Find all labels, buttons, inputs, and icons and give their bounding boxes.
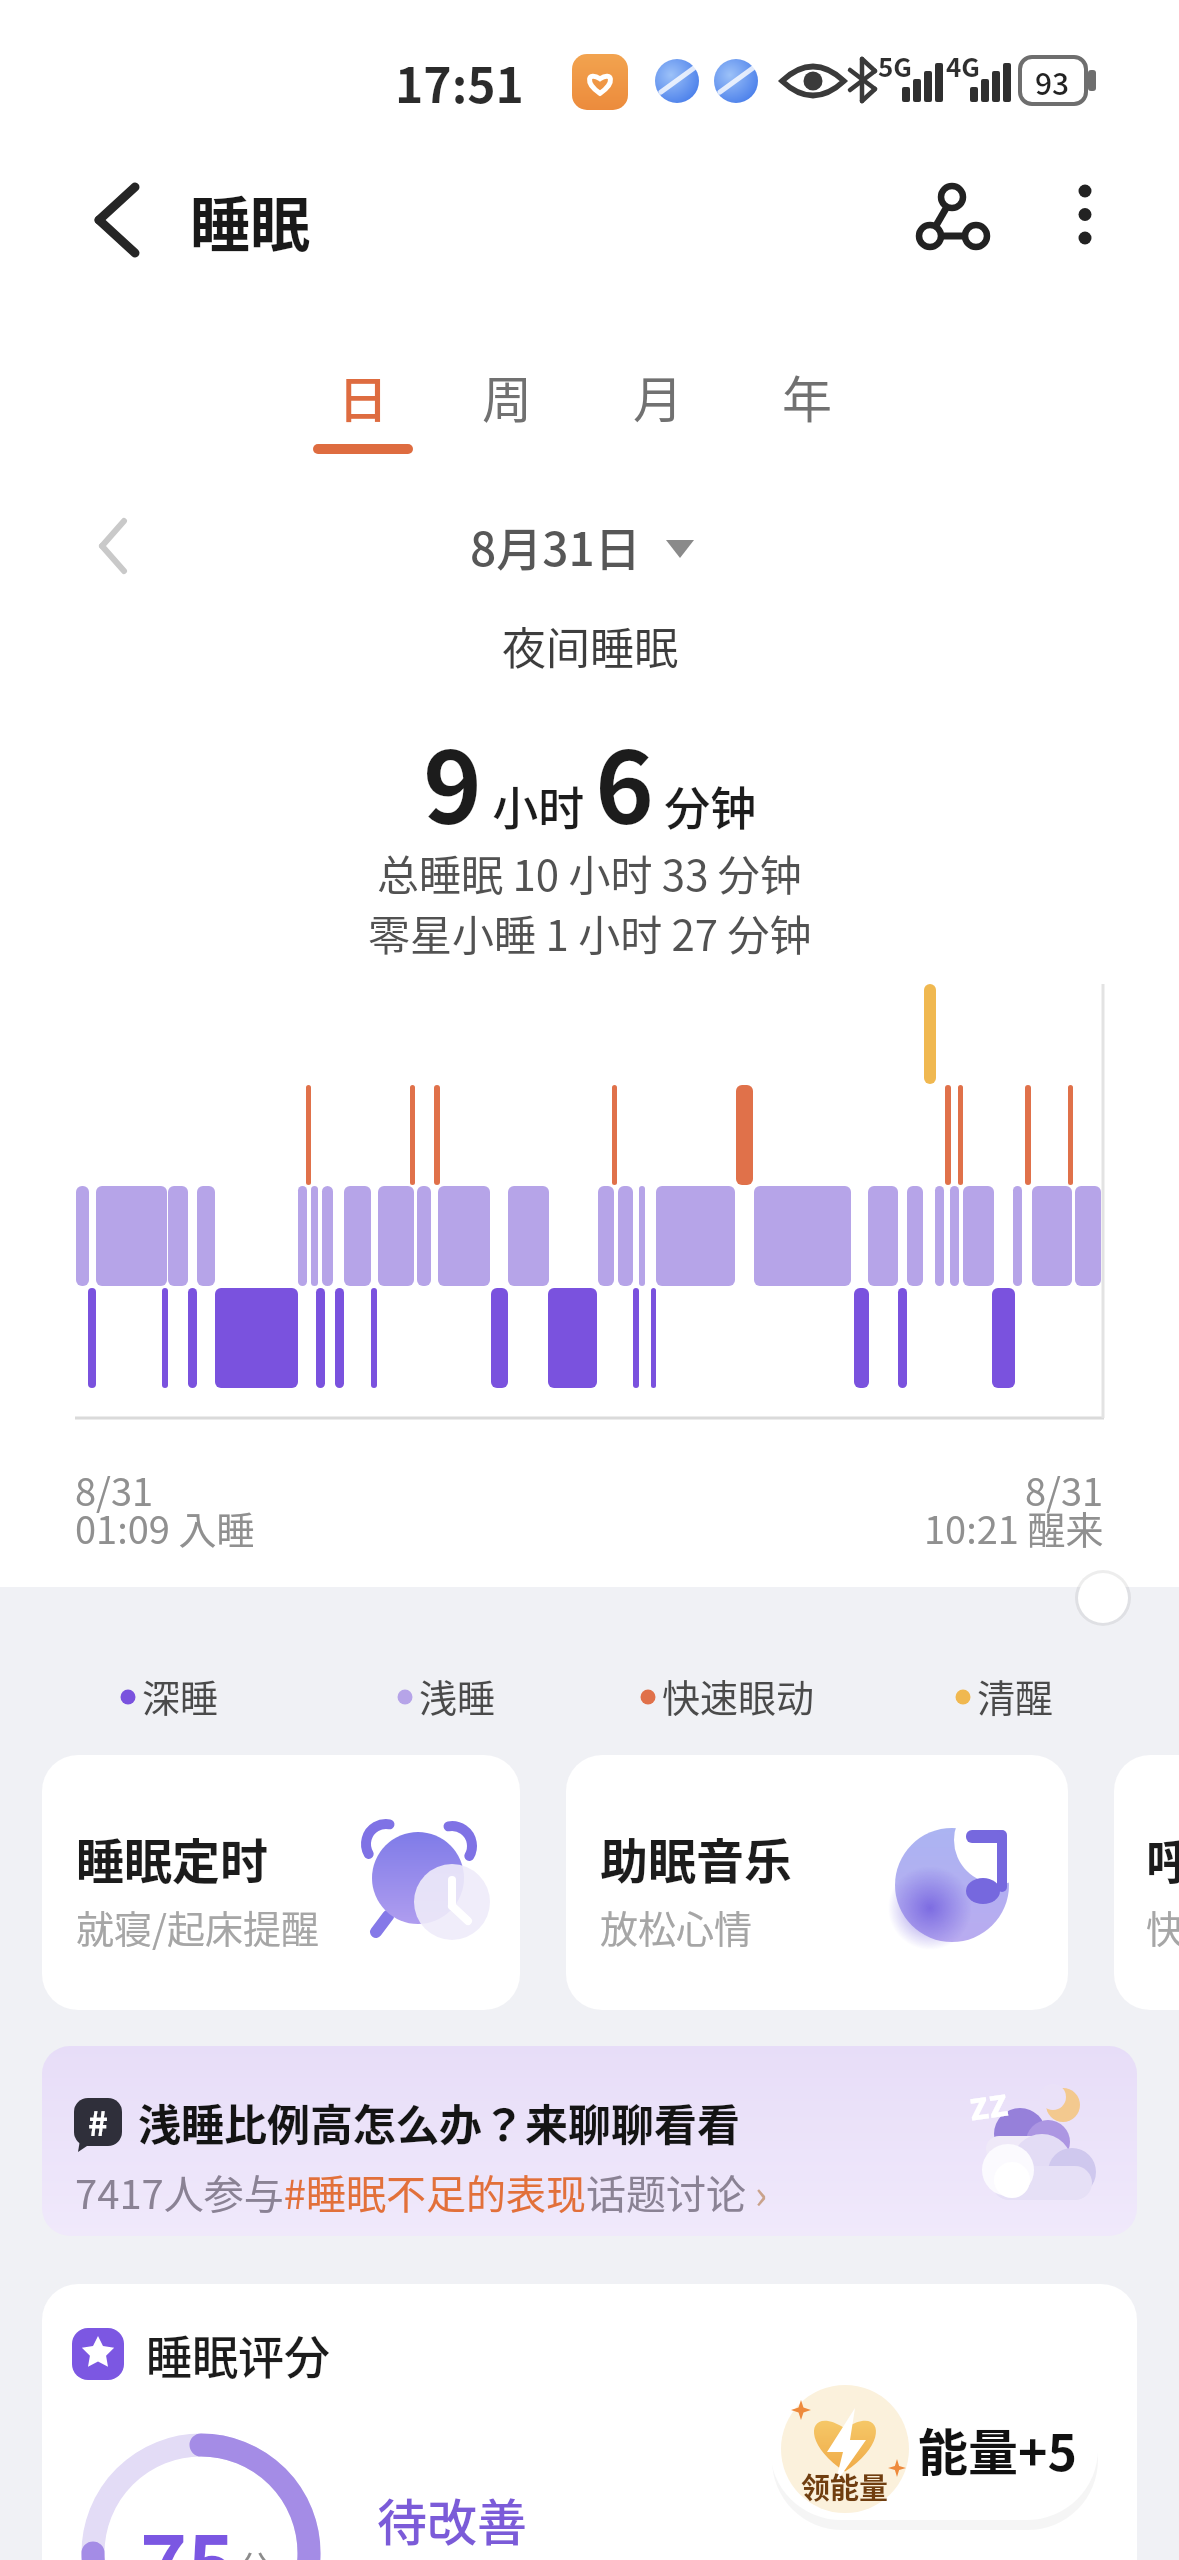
staticText: 睡眠评分 — [146, 2321, 330, 2388]
staticText: 01:09 入睡 — [75, 1500, 255, 1555]
button[interactable] — [1050, 180, 1120, 260]
button[interactable] — [1114, 1755, 1179, 2010]
staticText: # — [88, 2097, 109, 2146]
staticText: 浅睡 — [419, 1668, 496, 1723]
staticText: 领能量 — [801, 2465, 889, 2507]
staticText: zz — [965, 2072, 1011, 2131]
button[interactable] — [910, 180, 1000, 260]
staticText: 助眠音乐 — [600, 1823, 793, 1893]
staticText: 能量+5 — [918, 2413, 1077, 2485]
staticText: 日 — [338, 360, 388, 432]
button[interactable] — [303, 350, 423, 455]
staticText: 快速眼动 — [662, 1668, 815, 1723]
button[interactable] — [447, 350, 567, 455]
staticText: 分钟 — [654, 772, 757, 839]
staticText: 分 — [238, 2542, 272, 2560]
staticText: 快速入睡 — [1146, 1899, 1179, 1954]
staticText: 小时 — [482, 772, 595, 839]
staticText: 放松心情 — [600, 1899, 753, 1954]
staticText: 5G — [878, 47, 912, 85]
button[interactable] — [42, 2046, 1137, 2236]
staticText: 8/31 — [75, 1462, 154, 1517]
staticText: 8/31 — [1025, 1462, 1104, 1517]
staticText: 93 — [1035, 60, 1070, 103]
staticText: 17:51 — [395, 47, 524, 117]
staticText: 呼吸训练 — [1146, 1823, 1179, 1893]
button[interactable] — [770, 2378, 1098, 2520]
button[interactable] — [80, 180, 160, 260]
staticText: 待改善 — [377, 2483, 527, 2555]
staticText: 清醒 — [977, 1668, 1054, 1723]
staticText: 夜间睡眠 — [502, 614, 678, 678]
staticText: 浅睡比例高怎么办？来聊聊看看 — [138, 2091, 740, 2153]
staticText: 零星小睡 1 小时 27 分钟 — [368, 902, 812, 963]
staticText: 年 — [782, 360, 832, 432]
staticText: 月 — [633, 360, 683, 432]
button[interactable] — [42, 2284, 1137, 2560]
staticText: 6 — [595, 708, 654, 853]
staticText: 75 — [140, 2501, 235, 2560]
staticText: 深睡 — [142, 1668, 219, 1723]
staticText: 睡眠定时 — [76, 1823, 269, 1893]
staticText: 周 — [482, 360, 532, 432]
staticText: 睡眠 — [190, 177, 310, 264]
button[interactable] — [80, 510, 150, 582]
button[interactable] — [747, 350, 867, 455]
staticText: 9 — [423, 708, 482, 853]
button[interactable] — [566, 1755, 1068, 2010]
staticText: 10:21 醒来 — [924, 1500, 1104, 1555]
staticText: 4G — [946, 47, 980, 85]
staticText: 总睡眠 10 小时 33 分钟 — [377, 842, 802, 903]
staticText: 就寝/起床提醒 — [76, 1899, 319, 1954]
staticText: 8月31日 — [470, 513, 641, 580]
button[interactable] — [42, 1755, 520, 2010]
staticText: 7417人参与#睡眠不足的表现话题讨论 › — [75, 2163, 768, 2221]
button[interactable] — [598, 350, 718, 455]
